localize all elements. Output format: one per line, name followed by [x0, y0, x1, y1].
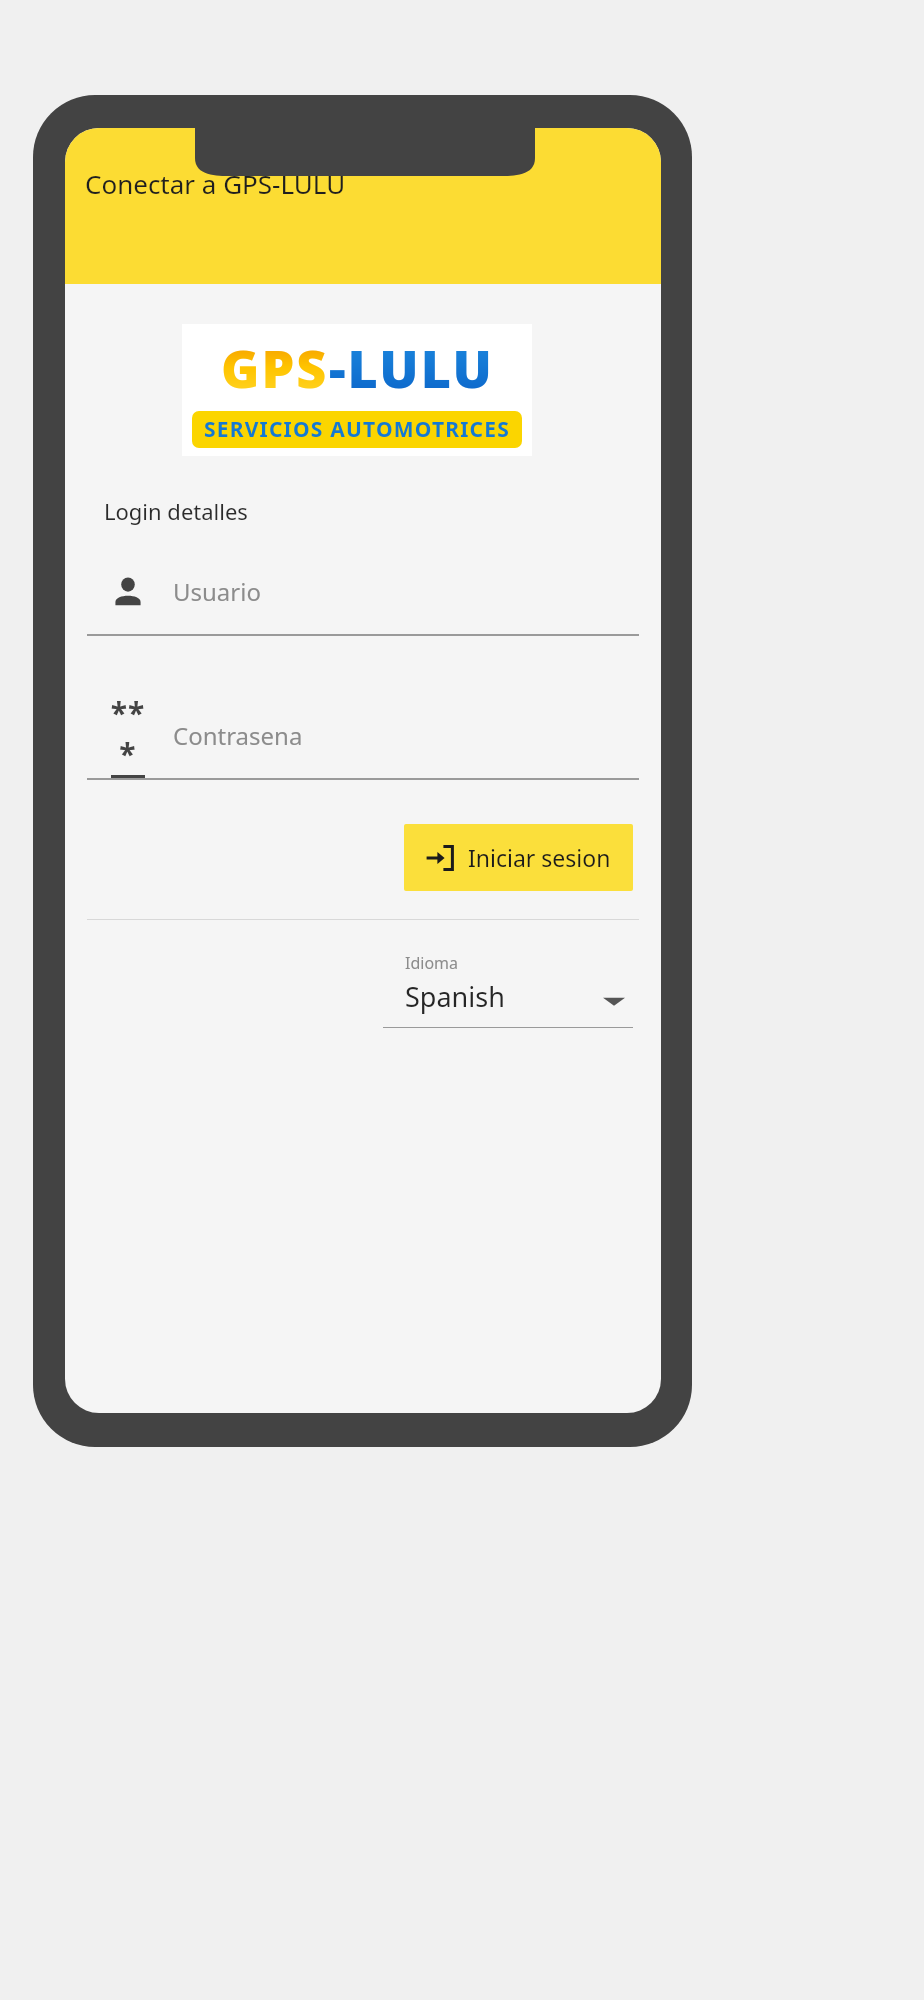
other: Password — [105, 692, 151, 778]
button[interactable]: Login — [404, 824, 633, 891]
staticText: Conectar a GPS-LULU — [85, 166, 346, 201]
button[interactable]: User — [87, 548, 639, 636]
staticText: Idioma — [405, 952, 459, 974]
staticText: Spanish — [405, 978, 505, 1015]
other: Login — [426, 843, 456, 873]
staticText: -LULU — [329, 332, 494, 403]
staticText: GPS — [221, 332, 329, 403]
staticText: *** — [105, 692, 151, 774]
staticText: Usuario — [173, 575, 261, 608]
staticText: Login detalles — [104, 496, 248, 526]
button[interactable]: Idioma — [383, 952, 633, 1028]
other: User — [111, 574, 145, 608]
button[interactable]: Password — [87, 692, 639, 780]
staticText: SERVICIOS AUTOMOTRICES — [204, 415, 510, 444]
staticText: Iniciar sesion — [468, 842, 611, 873]
staticText: Contrasena — [173, 719, 303, 752]
